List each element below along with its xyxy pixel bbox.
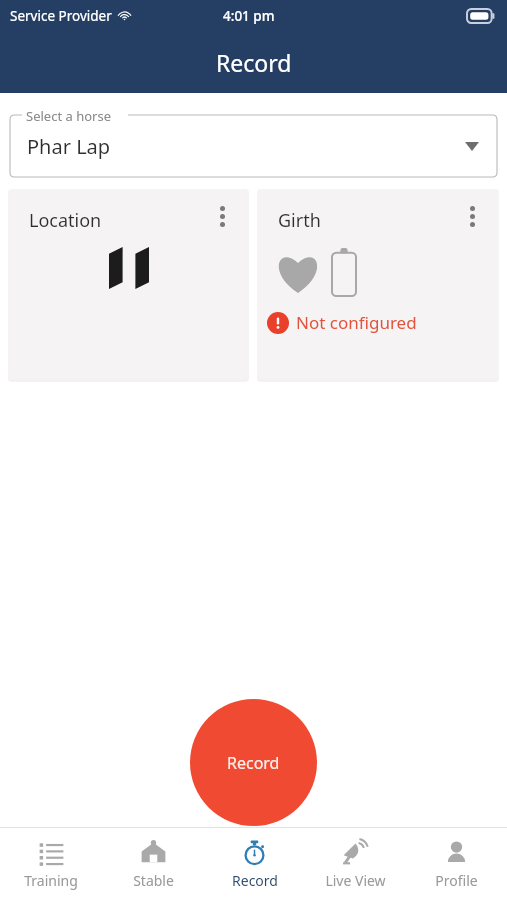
staticText: Service Provider — [10, 7, 112, 25]
staticText: Training — [24, 871, 78, 890]
button[interactable]: Record — [190, 699, 317, 826]
staticText: Record — [227, 752, 280, 774]
other: Open horse dropdown — [465, 142, 479, 151]
button[interactable]: Profile — [406, 828, 507, 900]
staticText: Girth — [278, 208, 321, 233]
button[interactable]: Stable — [102, 828, 204, 900]
staticText: 4:01 pm — [223, 7, 275, 25]
button[interactable]: Select a horse — [10, 107, 497, 177]
button[interactable]: Location — [8, 189, 249, 379]
staticText: Profile — [435, 871, 478, 890]
button[interactable]: Record — [204, 828, 305, 900]
button[interactable]: More options for Girth — [455, 199, 489, 233]
staticText: Location — [29, 208, 102, 233]
button[interactable]: More options for Location — [205, 199, 239, 233]
staticText: Record — [232, 871, 278, 890]
button[interactable]: Girth — [257, 189, 499, 379]
staticText: Not configured — [296, 311, 417, 334]
staticText: Phar Lap — [27, 133, 111, 160]
staticText: Record — [216, 47, 292, 78]
button[interactable]: Training — [0, 828, 102, 900]
button[interactable]: Live View — [305, 828, 406, 900]
staticText: Live View — [325, 871, 386, 890]
staticText: Stable — [133, 871, 174, 890]
staticText: Select a horse — [26, 107, 111, 125]
